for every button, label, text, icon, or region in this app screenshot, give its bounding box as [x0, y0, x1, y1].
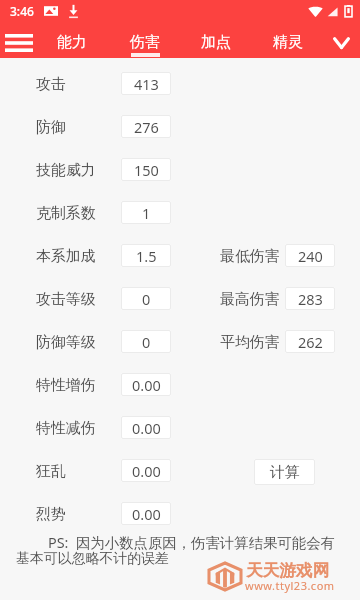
staticText: 240	[298, 246, 323, 266]
button[interactable]: 加点	[187, 22, 245, 58]
staticText: 攻击	[36, 75, 66, 94]
staticText: 烈势	[36, 505, 66, 524]
button[interactable]: 计算	[254, 459, 315, 485]
staticText: 特性减伤	[36, 419, 96, 438]
staticText: 3:46	[10, 3, 34, 19]
button[interactable]: 1.5	[121, 244, 171, 267]
button[interactable]: Expand	[322, 26, 360, 59]
staticText: 能力	[57, 33, 87, 52]
staticText: 攻击等级	[36, 290, 96, 309]
staticText: www.ttyl23.com	[245, 578, 335, 593]
staticText: 最高伤害	[220, 290, 280, 309]
staticText: 精灵	[273, 33, 303, 52]
staticText: 特性增伤	[36, 376, 96, 395]
staticText: 0.00	[132, 418, 161, 438]
staticText: 防御	[36, 118, 66, 137]
staticText: 技能威力	[36, 161, 96, 180]
staticText: 0.00	[132, 504, 161, 524]
button[interactable]: 0.00	[121, 416, 171, 439]
button[interactable]: 262	[285, 330, 335, 353]
staticText: 平均伤害	[220, 333, 280, 352]
button[interactable]: 0	[121, 287, 171, 310]
button[interactable]: 能力	[43, 22, 101, 58]
button[interactable]: 240	[285, 244, 335, 267]
staticText: 0	[142, 289, 151, 309]
staticText: 伤害	[130, 33, 160, 52]
staticText: 1.5	[136, 246, 157, 266]
button[interactable]: 0.00	[121, 373, 171, 396]
staticText: 基本可以忽略不计的误差	[16, 550, 169, 568]
staticText: 413	[134, 74, 159, 94]
staticText: 加点	[201, 33, 231, 52]
staticText: PS: 因为小数点原因，伤害计算结果可能会有	[48, 533, 335, 553]
staticText: 150	[134, 160, 159, 180]
staticText: 1	[142, 203, 151, 223]
button[interactable]: 276	[121, 115, 171, 138]
staticText: 0.00	[132, 375, 161, 395]
staticText: 276	[134, 117, 159, 137]
button[interactable]: Menu	[0, 26, 37, 59]
staticText: 狂乱	[36, 462, 66, 481]
staticText: 最低伤害	[220, 247, 280, 266]
staticText: 0	[142, 332, 151, 352]
button[interactable]: 283	[285, 287, 335, 310]
staticText: 0.00	[132, 461, 161, 481]
button[interactable]: 150	[121, 158, 171, 181]
staticText: 防御等级	[36, 333, 96, 352]
button[interactable]: 1	[121, 201, 171, 224]
button[interactable]: 0	[121, 330, 171, 353]
staticText: 天天游戏网	[246, 560, 329, 581]
staticText: 262	[298, 332, 323, 352]
button[interactable]: 精灵	[259, 22, 317, 58]
button[interactable]: 0.00	[121, 502, 171, 525]
button[interactable]: 413	[121, 72, 171, 95]
staticText: 本系加成	[36, 247, 96, 266]
staticText: 283	[298, 289, 323, 309]
staticText: 克制系数	[36, 204, 96, 223]
staticText: 计算	[270, 463, 300, 482]
button[interactable]: 0.00	[121, 459, 171, 482]
button[interactable]: 伤害	[116, 22, 174, 58]
